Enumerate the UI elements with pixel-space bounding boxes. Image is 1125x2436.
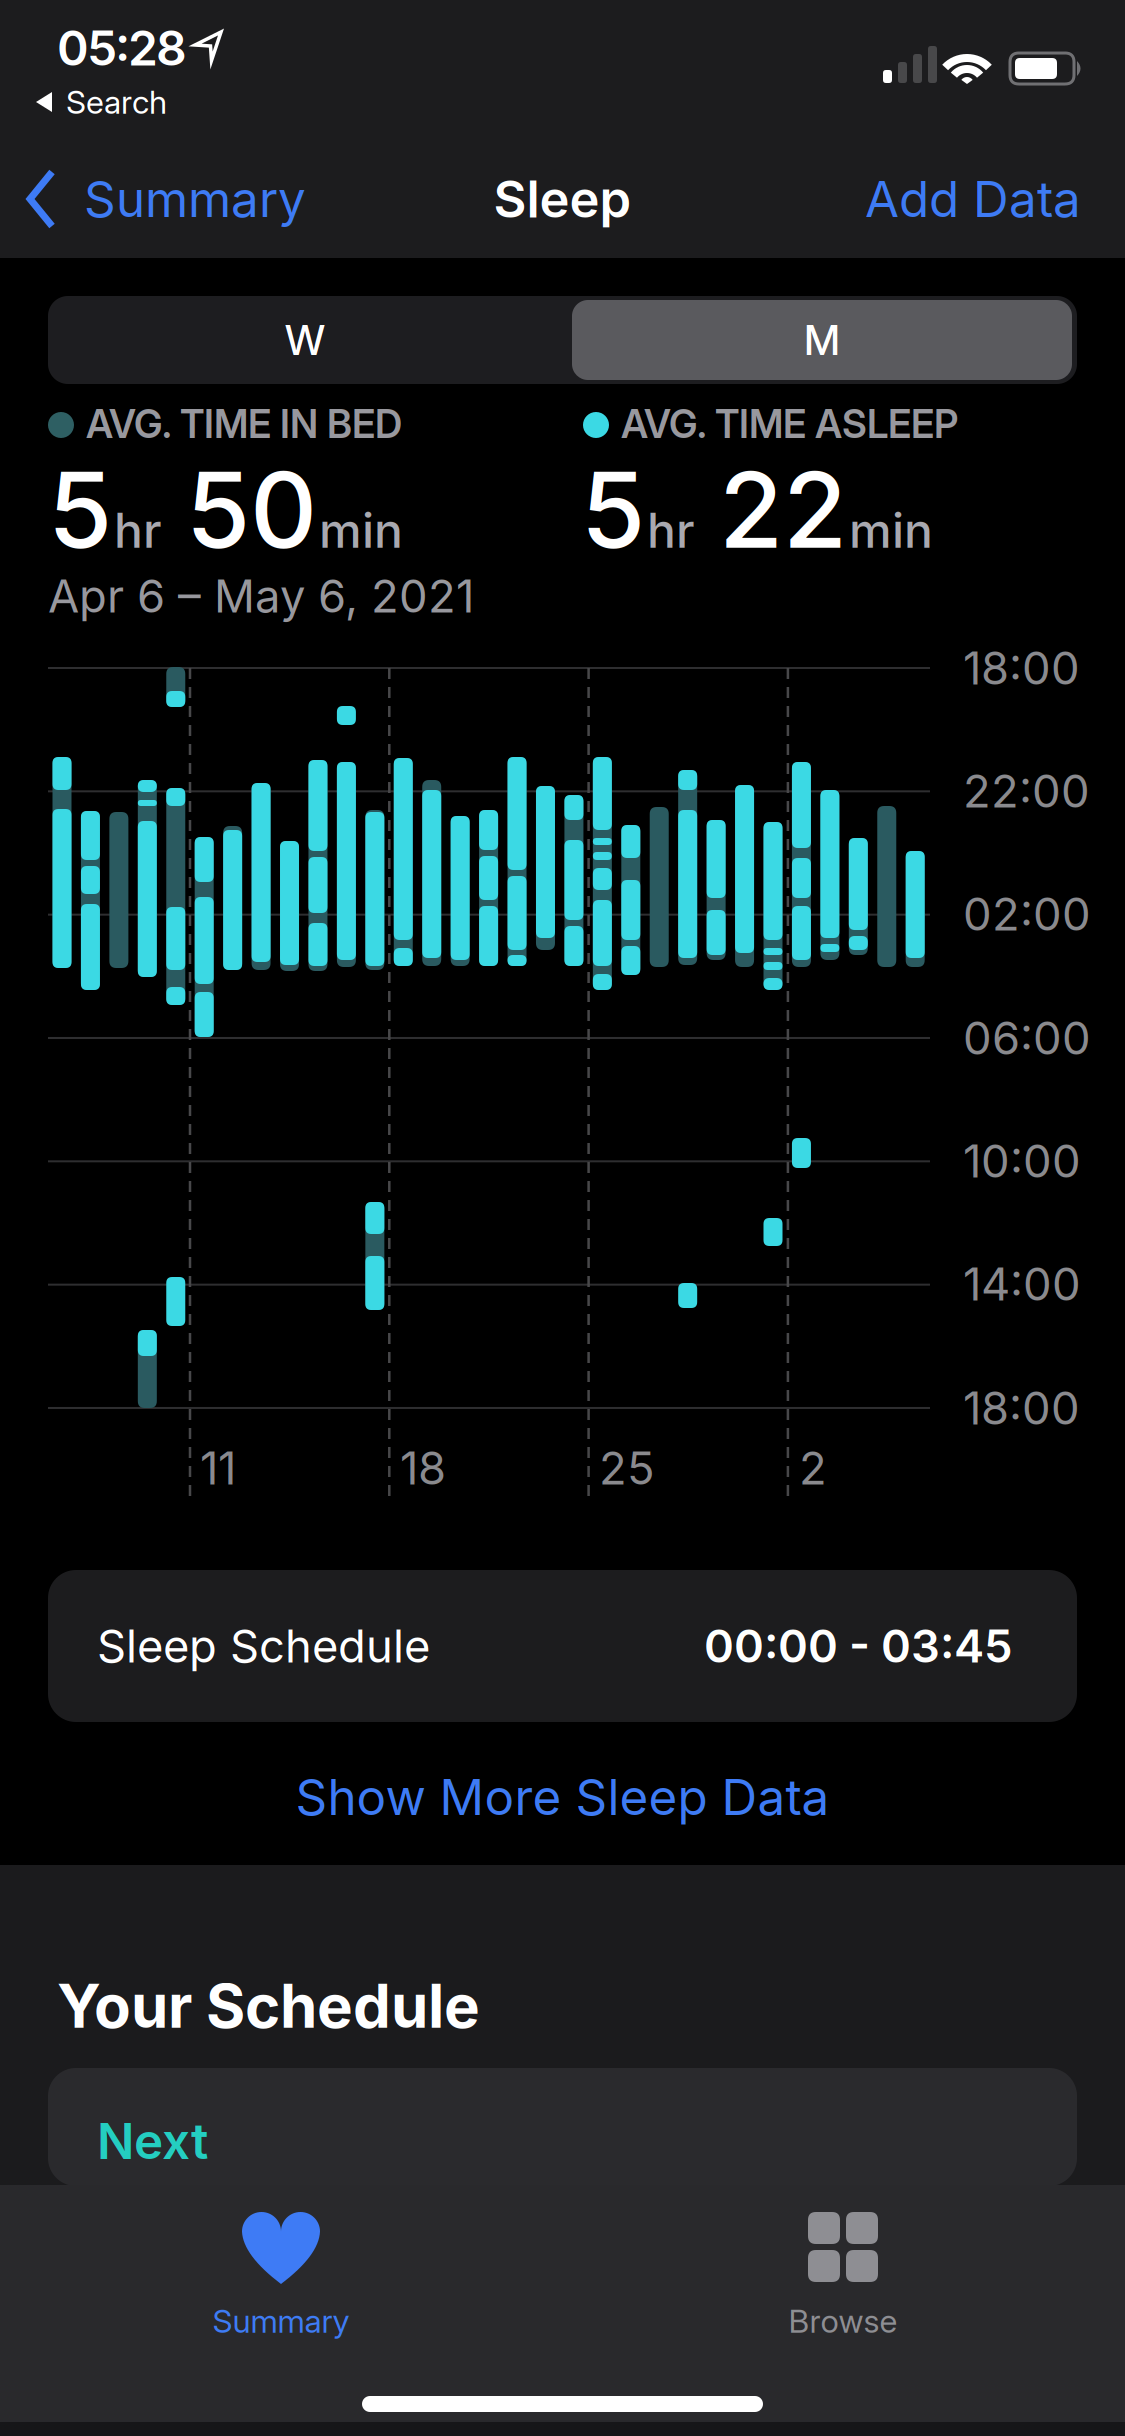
staticText: 2 <box>799 1441 827 1495</box>
button[interactable]: Sleep Schedule <box>48 1570 1077 1722</box>
staticText: hr <box>647 502 695 559</box>
staticText: min <box>849 502 933 559</box>
staticText: 5 <box>48 449 112 571</box>
staticText: 02:00 <box>963 887 1091 941</box>
staticText: Next <box>97 2112 208 2170</box>
staticText: Apr 6 – May 6, 2021 <box>48 569 474 623</box>
staticText: 11 <box>200 1441 236 1495</box>
button[interactable]: M <box>572 300 1072 380</box>
staticText: hr <box>114 502 162 559</box>
staticText: 06:00 <box>963 1011 1091 1065</box>
staticText: Summary <box>212 2302 349 2340</box>
staticText: min <box>319 502 403 559</box>
staticText: 22 <box>719 449 847 571</box>
button[interactable]: Show More Sleep Data <box>112 1762 1012 1832</box>
staticText: Sleep <box>493 169 631 229</box>
staticText: M <box>804 316 840 364</box>
button[interactable]: Summary <box>111 2210 451 2360</box>
button[interactable]: Summary <box>28 167 368 231</box>
button[interactable]: Search <box>36 80 256 124</box>
staticText: 14:00 <box>963 1257 1081 1311</box>
staticText: AVG. TIME ASLEEP <box>621 401 958 447</box>
staticText: 5 <box>581 449 645 571</box>
staticText: Add Data <box>865 170 1081 228</box>
button[interactable]: W <box>48 296 562 384</box>
staticText: W <box>285 316 325 364</box>
staticText: 22:00 <box>963 764 1090 818</box>
staticText: 10:00 <box>963 1134 1081 1188</box>
staticText: 50 <box>186 449 317 571</box>
staticText: Show More Sleep Data <box>295 1768 829 1826</box>
staticText: Sleep Schedule <box>97 1619 430 1673</box>
staticText: Browse <box>788 2302 897 2340</box>
staticText: 05:28 <box>57 20 187 76</box>
staticText: AVG. TIME IN BED <box>86 401 402 447</box>
staticText: 00:00 - 03:45 <box>704 1619 1013 1673</box>
button[interactable]: Next <box>48 2068 1077 2186</box>
button[interactable]: Add Data <box>781 167 1081 231</box>
staticText: 25 <box>599 1441 655 1495</box>
button[interactable]: Browse <box>698 2210 988 2360</box>
staticText: 18:00 <box>963 641 1080 695</box>
staticText: 18:00 <box>963 1381 1080 1435</box>
staticText: Summary <box>84 170 306 228</box>
staticText: Your Schedule <box>57 1971 480 2041</box>
staticText: 18 <box>400 1441 446 1495</box>
staticText: Search <box>66 83 167 121</box>
